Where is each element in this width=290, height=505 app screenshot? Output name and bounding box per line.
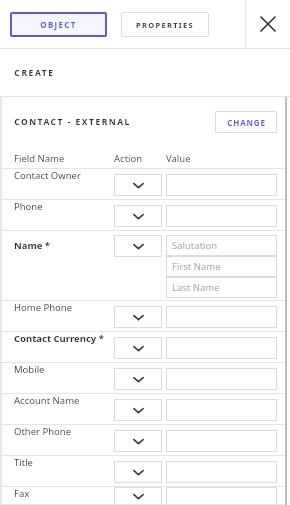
button[interactable]: First Name	[166, 256, 277, 277]
button[interactable]: Select action	[114, 205, 162, 227]
staticText: Last Name	[172, 281, 220, 294]
button[interactable]: Select action	[114, 174, 162, 196]
button[interactable]: Close	[246, 0, 290, 48]
staticText: Account Name	[14, 394, 80, 407]
staticText: Title	[14, 456, 33, 469]
button[interactable]: Mobile	[2, 363, 114, 394]
staticText: PROPERTIES	[136, 20, 194, 30]
staticText: Home Phone	[14, 301, 73, 314]
staticText: Contact Currency *	[14, 332, 104, 345]
button[interactable]: Select action	[114, 461, 162, 483]
button[interactable]	[166, 399, 277, 421]
button[interactable]: Select action	[114, 487, 162, 505]
button[interactable]	[166, 430, 277, 452]
staticText: Phone	[14, 200, 43, 213]
button[interactable]: Select action	[114, 399, 162, 421]
button[interactable]: Last Name	[166, 277, 277, 298]
staticText: First Name	[172, 260, 221, 273]
staticText: Value	[166, 152, 191, 165]
staticText: Action	[114, 152, 143, 165]
staticText: Contact Owner	[14, 169, 81, 182]
button[interactable]: Title	[2, 456, 114, 487]
button[interactable]: Home Phone	[2, 301, 114, 332]
staticText: Fax	[14, 487, 30, 500]
button[interactable]: Select action	[114, 306, 162, 328]
button[interactable]: Select action	[114, 337, 162, 359]
staticText: CONTACT - EXTERNAL	[14, 116, 131, 128]
staticText: Name *	[14, 239, 50, 252]
button[interactable]: Contact Owner	[2, 169, 114, 200]
button[interactable]	[166, 368, 277, 390]
button[interactable]: Contact Currency *	[2, 332, 114, 363]
button[interactable]: PROPERTIES	[121, 12, 209, 37]
button[interactable]: Select action	[114, 235, 162, 257]
button[interactable]	[166, 487, 277, 505]
button[interactable]: Fax	[2, 487, 114, 505]
staticText: Salutation	[172, 239, 218, 252]
button[interactable]: Select action	[114, 430, 162, 452]
button[interactable]	[166, 205, 277, 227]
button[interactable]	[166, 174, 277, 196]
button[interactable]	[166, 461, 277, 483]
staticText: Field Name	[14, 152, 65, 165]
button[interactable]: Account Name	[2, 394, 114, 425]
button[interactable]: Name *	[2, 231, 114, 301]
staticText: CREATE	[14, 67, 55, 79]
button[interactable]	[166, 337, 277, 359]
button[interactable]: Select action	[114, 368, 162, 390]
button[interactable]: OBJECT	[10, 12, 107, 37]
button[interactable]: CHANGE	[215, 111, 277, 133]
button[interactable]: Other Phone	[2, 425, 114, 456]
button[interactable]: Phone	[2, 200, 114, 231]
button[interactable]	[166, 306, 277, 328]
button[interactable]: Salutation	[166, 235, 277, 256]
staticText: OBJECT	[40, 19, 77, 30]
button[interactable]: CREATE	[0, 49, 290, 96]
staticText: CHANGE	[227, 117, 266, 128]
staticText: Mobile	[14, 363, 45, 376]
staticText: Other Phone	[14, 425, 72, 438]
